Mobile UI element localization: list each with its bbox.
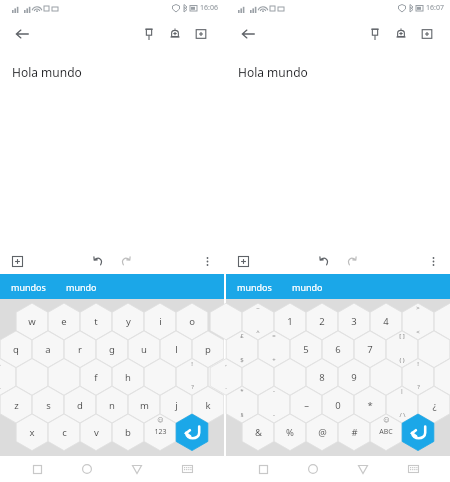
button[interactable]: % [274,425,306,439]
staticText: - [273,387,275,395]
button[interactable]: Pin [136,21,162,47]
staticText: 123 [154,427,167,437]
staticText: 9 [351,371,357,384]
staticText: 16:06 [200,3,218,13]
button[interactable]: q [0,342,32,356]
staticText: mundos [237,281,272,293]
button[interactable]: n [96,398,128,412]
button[interactable]: h [112,370,144,384]
staticText: ! [191,360,193,368]
button[interactable]: Switch keyboard [174,456,200,482]
staticText: r [78,343,82,356]
button[interactable]: Recents [250,456,276,482]
staticText: f [94,371,98,384]
button[interactable]: Back [10,22,34,46]
button[interactable]: e [48,314,80,328]
button[interactable]: 1 [274,314,306,328]
staticText: * [240,387,244,395]
button[interactable]: s [32,398,64,412]
button[interactable]: Add [233,251,253,271]
button[interactable]: mundos [9,277,48,297]
button[interactable]: mundo [64,277,99,297]
staticText: s [46,399,51,412]
button[interactable]: 3 [338,314,370,328]
button[interactable]: 2 [306,314,338,328]
button[interactable]: 123 [144,425,176,439]
button[interactable]: & [242,425,274,439]
button[interactable]: Keyboard [0,299,224,456]
button[interactable]: Back [124,456,150,482]
staticText: [ ] [399,332,405,340]
button[interactable]: x [16,425,48,439]
button[interactable]: Home [74,456,100,482]
button[interactable]: ¿ [418,398,450,412]
button[interactable]: Recents [24,456,50,482]
button[interactable]: m [128,398,160,412]
button[interactable]: Add reminder [162,21,188,47]
button[interactable]: Back [350,456,376,482]
button[interactable]: g [96,342,128,356]
button[interactable]: # [338,425,370,439]
button[interactable]: More options [423,251,443,271]
button[interactable]: f [80,370,112,384]
button[interactable]: t [80,314,112,328]
button[interactable]: 7 [354,342,386,356]
button[interactable]: Undo [313,250,335,272]
button[interactable]: v [80,425,112,439]
button[interactable]: More options [197,251,217,271]
button[interactable]: j [160,398,192,412]
button[interactable]: 5 [290,342,322,356]
staticText: l [175,343,178,356]
staticText: < [416,328,420,336]
staticText: mundo [292,281,323,293]
staticText: # [351,426,358,439]
button[interactable]: Add [7,251,27,271]
button[interactable]: p [192,342,224,356]
button[interactable]: b [112,425,144,439]
button[interactable]: 6 [322,342,354,356]
button[interactable]: Archive [188,21,214,47]
staticText: - [273,411,275,419]
staticText: ? [417,383,420,391]
button[interactable]: u [128,342,160,356]
button[interactable]: 8 [306,370,338,384]
button[interactable]: – [290,398,322,412]
button[interactable]: 9 [338,370,370,384]
button[interactable]: Undo [87,250,109,272]
button[interactable]: o [176,314,208,328]
staticText: d [77,399,83,412]
button[interactable]: y [112,314,144,328]
staticText: n [109,399,115,412]
button[interactable]: mundo [290,277,325,297]
button[interactable]: Redo [341,250,363,272]
button[interactable]: Keyboard [226,299,450,456]
button[interactable]: Archive [414,21,440,47]
button[interactable]: k [192,398,224,412]
button[interactable]: Add reminder [388,21,414,47]
button[interactable]: r [64,342,96,356]
staticText: y [126,315,131,328]
button[interactable]: l [160,342,192,356]
button[interactable]: Pin [362,21,388,47]
button[interactable]: 0 [322,398,354,412]
button[interactable]: ABC [370,425,402,439]
button[interactable]: Back [236,22,260,46]
button[interactable]: w [16,314,48,328]
staticText: b [125,426,131,439]
button[interactable]: * [354,398,386,412]
button[interactable]: Switch keyboard [400,456,426,482]
button[interactable]: Home [300,456,326,482]
button[interactable]: c [48,425,80,439]
button[interactable]: mundos [235,277,274,297]
staticText: i [159,315,162,328]
button[interactable]: z [0,398,32,412]
button[interactable]: Redo [115,250,137,272]
button[interactable]: a [32,342,64,356]
button[interactable]: @ [306,425,338,439]
staticText: j [175,399,178,412]
staticText: £ [240,332,244,340]
button[interactable]: i [144,314,176,328]
staticText: z [14,399,19,412]
button[interactable]: d [64,398,96,412]
button[interactable]: 4 [370,314,402,328]
